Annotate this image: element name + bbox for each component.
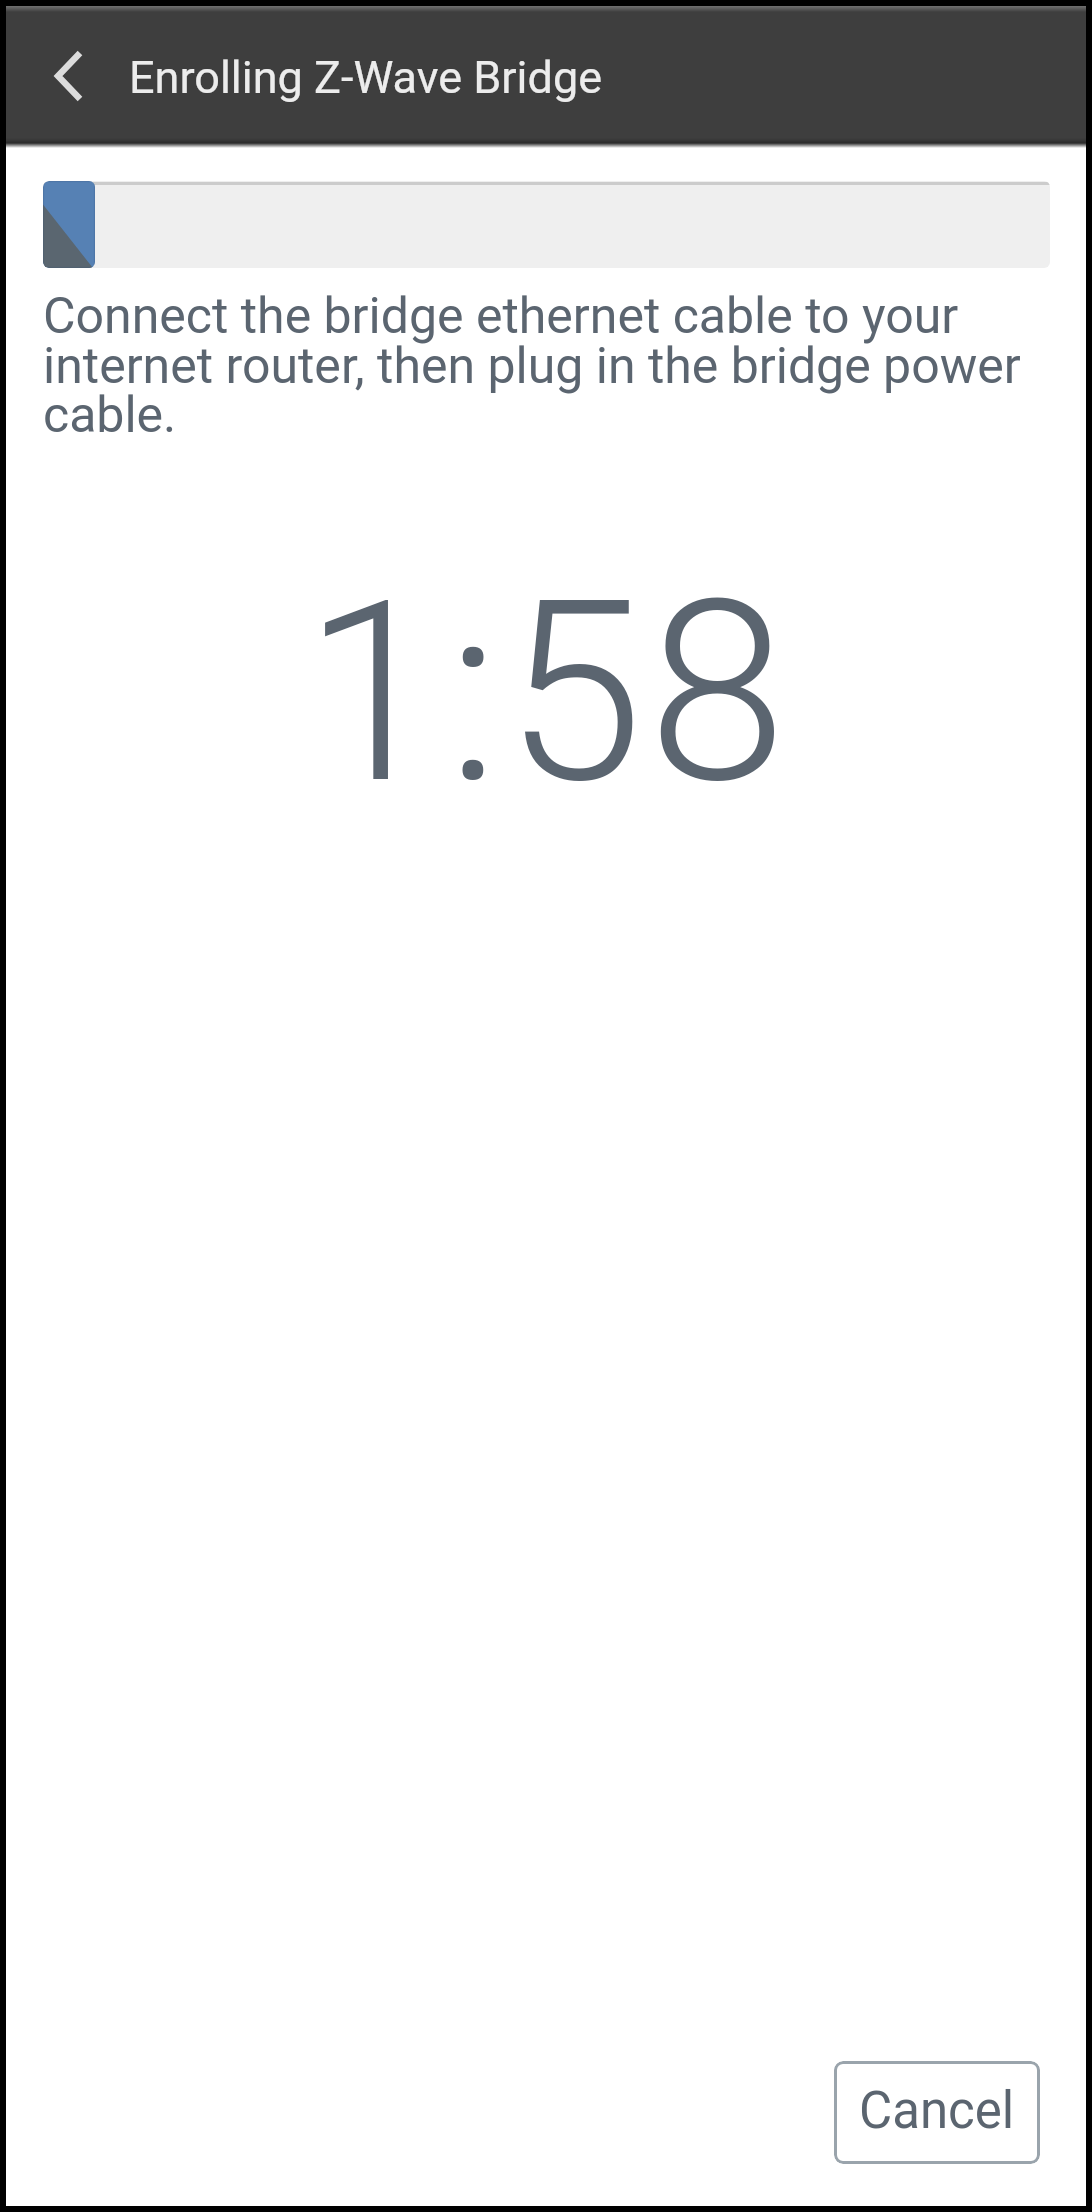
button[interactable]: Back [26, 24, 126, 124]
staticText: Connect the bridge ethernet cable to you… [43, 287, 1053, 444]
staticText: Cancel [859, 2081, 1015, 2141]
staticText: 1:58 [303, 547, 792, 840]
staticText: Enrolling Z-Wave Bridge [129, 51, 603, 104]
button[interactable]: Cancel [834, 2061, 1040, 2164]
